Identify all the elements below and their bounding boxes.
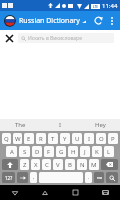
button[interactable]: M: [89, 159, 99, 170]
staticText: ни: [97, 175, 102, 180]
staticText: M: [91, 161, 97, 169]
staticText: J: [84, 148, 86, 156]
staticText: Z: [23, 161, 27, 169]
button[interactable]: Backspace: [101, 159, 118, 170]
staticText: X: [34, 161, 38, 169]
staticText: I: [88, 135, 91, 143]
button[interactable]: [39, 172, 83, 183]
button[interactable]: Shift: [2, 159, 18, 170]
button[interactable]: O: [96, 133, 106, 144]
button[interactable]: F: [44, 146, 54, 157]
staticText: C: [45, 161, 49, 169]
staticText: W: [15, 135, 21, 143]
staticText: Искать в Викисловаре: [28, 35, 82, 42]
button[interactable]: Close search: [3, 32, 16, 45]
button[interactable]: S: [19, 146, 30, 157]
staticText: S: [23, 148, 27, 156]
button[interactable]: Search: [106, 172, 118, 183]
staticText: V: [56, 161, 60, 169]
button[interactable]: J: [80, 146, 90, 157]
staticText: D: [35, 148, 40, 156]
staticText: Russian Dictionary: [19, 16, 80, 26]
button[interactable]: .: [85, 172, 92, 183]
button[interactable]: Language: Russian: [3, 14, 16, 27]
button[interactable]: N: [77, 159, 87, 170]
staticText: E: [27, 135, 31, 143]
button[interactable]: Symbols: [2, 172, 15, 183]
button[interactable]: ,: [30, 172, 37, 183]
staticText: 12?: [5, 175, 13, 181]
button[interactable]: The: [0, 119, 40, 131]
staticText: L: [107, 148, 111, 156]
staticText: R: [39, 135, 43, 143]
button[interactable]: V: [53, 159, 63, 170]
button[interactable]: Q: [2, 133, 11, 144]
button[interactable]: Y: [60, 133, 70, 144]
button[interactable]: Emoji: [94, 172, 104, 183]
staticText: LTE: [93, 5, 99, 9]
staticText: ,: [33, 174, 35, 181]
button[interactable]: C: [42, 159, 51, 170]
staticText: .: [88, 174, 90, 181]
button[interactable]: B: [65, 159, 75, 170]
button[interactable]: K: [92, 146, 102, 157]
staticText: U: [75, 135, 80, 143]
staticText: N: [80, 161, 85, 169]
button[interactable]: Hide keyboard: [90, 185, 120, 200]
button[interactable]: G: [56, 146, 66, 157]
staticText: O: [99, 135, 104, 143]
button[interactable]: W: [13, 133, 22, 144]
button[interactable]: P: [108, 133, 118, 144]
button[interactable]: Hey: [80, 119, 120, 131]
button[interactable]: L: [104, 146, 114, 157]
staticText: H: [71, 148, 76, 156]
button[interactable]: A: [6, 146, 17, 157]
button[interactable]: I: [40, 119, 80, 131]
button[interactable]: Back: [0, 185, 30, 200]
button[interactable]: R: [36, 133, 46, 144]
button[interactable]: D: [32, 146, 42, 157]
staticText: The: [15, 121, 26, 129]
staticText: F: [47, 148, 51, 156]
button[interactable]: U: [72, 133, 82, 144]
staticText: Hey: [95, 121, 106, 129]
button[interactable]: Tab: [17, 172, 28, 183]
button[interactable]: E: [24, 133, 34, 144]
staticText: Y: [63, 135, 67, 143]
button[interactable]: Home: [30, 185, 60, 200]
button[interactable]: Искать в Викисловаре: [18, 33, 114, 43]
staticText: G: [59, 148, 64, 156]
button[interactable]: Refresh: [91, 13, 106, 28]
button[interactable]: Recent apps: [60, 185, 90, 200]
button[interactable]: More options: [106, 15, 117, 26]
staticText: 11:44: [102, 2, 118, 10]
button[interactable]: Z: [20, 159, 29, 170]
staticText: K: [95, 148, 99, 156]
button[interactable]: X: [31, 159, 40, 170]
staticText: I: [59, 121, 62, 129]
button[interactable]: T: [48, 133, 58, 144]
staticText: B: [68, 161, 72, 169]
staticText: P: [111, 135, 115, 143]
button[interactable]: I: [84, 133, 94, 144]
staticText: A: [10, 148, 14, 156]
button[interactable]: H: [68, 146, 78, 157]
staticText: Q: [4, 135, 9, 143]
staticText: T: [51, 135, 55, 143]
